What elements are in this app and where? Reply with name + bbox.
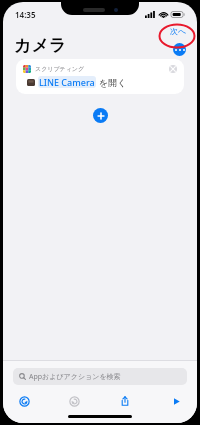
staticText: Appおよびアクションを検索 <box>29 372 121 382</box>
button[interactable]: Play <box>169 394 183 408</box>
button[interactable]: Redo <box>67 394 81 408</box>
button[interactable]: 次へ <box>160 23 197 39</box>
staticText: LINE Camera <box>39 76 95 88</box>
staticText: を開く <box>99 77 127 88</box>
button[interactable]: Add action <box>93 108 108 123</box>
staticText: 次へ <box>170 26 187 36</box>
staticText: スクリプティング <box>35 65 85 73</box>
button[interactable]: スクリプティング <box>16 59 184 94</box>
button[interactable]: Appおよびアクションを検索 <box>13 368 187 385</box>
button[interactable]: Undo <box>17 394 31 408</box>
button[interactable]: Share <box>118 394 132 408</box>
staticText: カメラ <box>14 35 67 56</box>
button[interactable]: More options <box>173 43 186 56</box>
button[interactable]: Remove action <box>169 65 177 73</box>
staticText: 14:35 <box>15 9 36 20</box>
